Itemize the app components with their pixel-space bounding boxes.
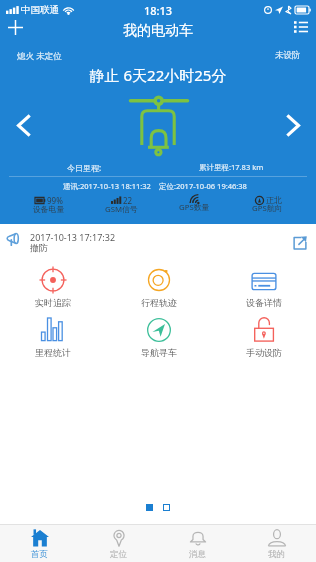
staticText: 正北 bbox=[266, 195, 282, 205]
staticText: 99% bbox=[47, 195, 63, 206]
staticText: 通讯:2017-10-13 18:11:32 bbox=[63, 181, 151, 191]
staticText: GSM信号 bbox=[105, 204, 138, 215]
button[interactable]: Add device bbox=[2, 17, 28, 37]
staticText: 熄火 未定位 bbox=[17, 50, 62, 62]
staticText: 中国联通 bbox=[21, 4, 59, 16]
button[interactable]: 2017-10-13 17:17:32 bbox=[0, 224, 316, 258]
staticText: 我的电动车 bbox=[123, 22, 193, 40]
staticText: 今日里程: bbox=[67, 162, 102, 173]
staticText: 静止 6天22小时25分 bbox=[0, 65, 316, 85]
button[interactable]: 消息 bbox=[158, 524, 237, 562]
staticText: 设备电量 bbox=[33, 204, 65, 214]
staticText: GPS航向 bbox=[252, 203, 283, 214]
staticText: 22 bbox=[123, 195, 133, 206]
button[interactable]: 行程轨迹 bbox=[106, 262, 211, 312]
button[interactable]: 实时追踪 bbox=[0, 262, 106, 312]
button[interactable]: 设备详情 bbox=[211, 262, 316, 312]
button[interactable]: Next vehicle bbox=[278, 110, 308, 140]
staticText: 消息 bbox=[189, 549, 206, 560]
staticText: 里程统计 bbox=[35, 347, 71, 358]
staticText: 定位:2017-10-06 19:46:38 bbox=[159, 181, 247, 191]
button[interactable]: Open detail bbox=[289, 232, 311, 254]
button[interactable]: 手动设防 bbox=[211, 312, 316, 362]
staticText: 18:13 bbox=[144, 3, 173, 18]
button[interactable]: 里程统计 bbox=[0, 312, 106, 362]
staticText: 定位 bbox=[110, 549, 127, 560]
staticText: 2017-10-13 17:17:32 bbox=[30, 231, 116, 243]
staticText: 行程轨迹 bbox=[141, 297, 177, 308]
button[interactable]: 定位 bbox=[79, 524, 158, 562]
staticText: 手动设防 bbox=[246, 347, 282, 358]
staticText: 导航寻车 bbox=[141, 347, 177, 358]
staticText: 未设防 bbox=[275, 50, 301, 61]
staticText: GPS数量 bbox=[179, 202, 210, 213]
button[interactable]: Device list bbox=[288, 17, 314, 37]
staticText: 累计里程:17.83 km bbox=[199, 162, 264, 172]
button[interactable]: 导航寻车 bbox=[106, 312, 211, 362]
button[interactable]: 我的 bbox=[237, 524, 316, 562]
staticText: 实时追踪 bbox=[35, 297, 71, 308]
button[interactable]: 首页 bbox=[0, 524, 79, 562]
staticText: 我的 bbox=[268, 549, 285, 560]
staticText: 设备详情 bbox=[246, 297, 282, 308]
button[interactable]: Previous vehicle bbox=[8, 110, 38, 140]
staticText: 首页 bbox=[31, 549, 48, 560]
staticText: 撤防 bbox=[30, 242, 48, 253]
